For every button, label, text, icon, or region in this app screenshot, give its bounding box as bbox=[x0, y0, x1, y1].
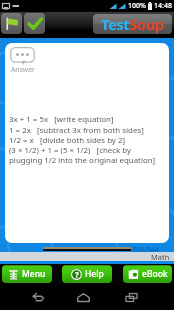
staticText: 14:48 bbox=[154, 1, 172, 11]
button[interactable]: Recent apps bbox=[113, 286, 149, 308]
button[interactable]: eBook bbox=[123, 265, 172, 283]
button[interactable]: Submit answer bbox=[24, 13, 45, 34]
staticText: TestSoup bbox=[101, 14, 164, 34]
staticText: Math bbox=[151, 252, 170, 261]
button[interactable]: Home bbox=[65, 286, 101, 308]
staticText: 304/544 bbox=[132, 245, 159, 255]
staticText: 3x + 1 = 5x [write equation] 1 = 2x [sub… bbox=[9, 114, 169, 165]
button[interactable]: Menu bbox=[2, 265, 52, 283]
staticText: Help bbox=[85, 268, 104, 280]
staticText: 100% bbox=[128, 1, 146, 11]
button[interactable]: TestSoup bbox=[93, 14, 172, 34]
staticText: Answer bbox=[11, 65, 35, 74]
button[interactable]: Back bbox=[20, 286, 56, 308]
button[interactable]: Answer bbox=[9, 47, 36, 74]
staticText: eBook bbox=[142, 268, 168, 280]
button[interactable]: Flag question bbox=[1, 13, 22, 34]
staticText: Menu bbox=[22, 268, 46, 280]
button[interactable]: ? bbox=[62, 265, 112, 283]
staticText: ? bbox=[75, 269, 79, 280]
